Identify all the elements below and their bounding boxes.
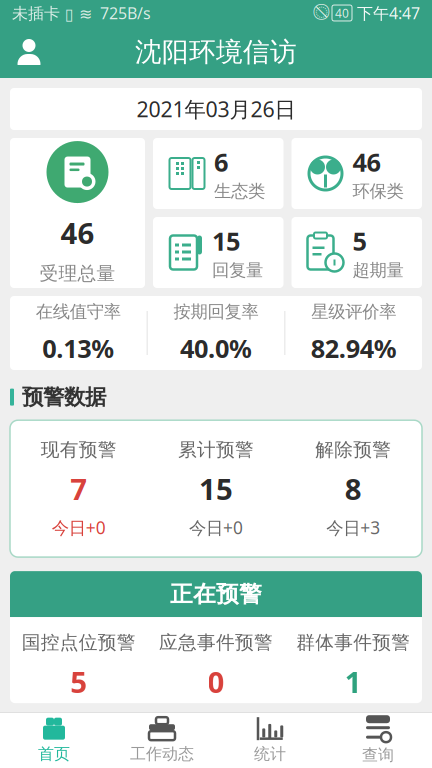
staticText: 国控点位预警 [22, 631, 136, 654]
staticText: 下午4:47 [352, 2, 420, 24]
staticText: 首页 [38, 744, 70, 764]
staticText: 应急事件预警 [159, 631, 273, 654]
staticText: 40.0% [180, 331, 252, 365]
button[interactable]: 46 [10, 138, 145, 288]
staticText: 预警数据 [22, 384, 106, 410]
staticText: 8 [345, 469, 362, 508]
staticText: 在线值守率 [36, 301, 121, 322]
staticText: 累计预警 [178, 438, 254, 461]
staticText: 查询 [362, 745, 394, 765]
staticText: 0.13% [42, 331, 114, 365]
staticText: 工作动态 [130, 744, 194, 764]
staticText: 5 [70, 662, 87, 701]
staticText: 今日+3 [326, 516, 380, 539]
staticText: 未插卡 ▯ ≋ 725B/s [12, 2, 151, 24]
staticText: 解除预警 [315, 438, 391, 461]
staticText: 沈阳环境信访 [135, 36, 297, 68]
staticText: 生态类 [214, 181, 265, 202]
staticText: 现有预警 [41, 438, 117, 461]
button[interactable]: 5 [291, 217, 422, 288]
staticText: 0 [207, 662, 224, 701]
staticText: 46 [352, 145, 380, 179]
button[interactable]: 首页 [0, 713, 108, 768]
staticText: ⃠ [315, 5, 332, 21]
staticText: 受理总量 [39, 262, 115, 285]
staticText: 超期量 [352, 260, 403, 281]
button[interactable]: 6 [153, 138, 283, 209]
staticText: 正在预警 [170, 580, 262, 608]
button[interactable]: 个人中心 [0, 26, 58, 78]
button[interactable]: 工作动态 [108, 713, 216, 768]
staticText: 5 [352, 224, 366, 258]
staticText: 46 [60, 213, 94, 252]
staticText: 群体事件预警 [296, 631, 410, 654]
button[interactable]: 15 [153, 217, 283, 288]
staticText: 今日+0 [52, 516, 106, 539]
button[interactable]: 2021年03月26日 [10, 88, 422, 130]
button[interactable]: 46 [291, 138, 422, 209]
staticText: 统计 [254, 744, 286, 764]
staticText: 今日+0 [189, 516, 243, 539]
staticText: 回复量 [212, 260, 263, 281]
staticText: 2021年03月26日 [136, 95, 295, 123]
staticText: 按期回复率 [173, 301, 258, 322]
staticText: 6 [214, 145, 228, 179]
staticText: 星级评价率 [311, 301, 396, 322]
staticText: 82.94% [311, 331, 397, 365]
button[interactable]: 查询 [324, 713, 432, 768]
staticText: 环保类 [352, 181, 403, 202]
staticText: 7 [70, 469, 87, 508]
staticText: 40 [335, 5, 349, 21]
staticText: 15 [199, 469, 233, 508]
button[interactable]: 统计 [216, 713, 324, 768]
staticText: 15 [212, 224, 240, 258]
staticText: 1 [345, 662, 362, 701]
